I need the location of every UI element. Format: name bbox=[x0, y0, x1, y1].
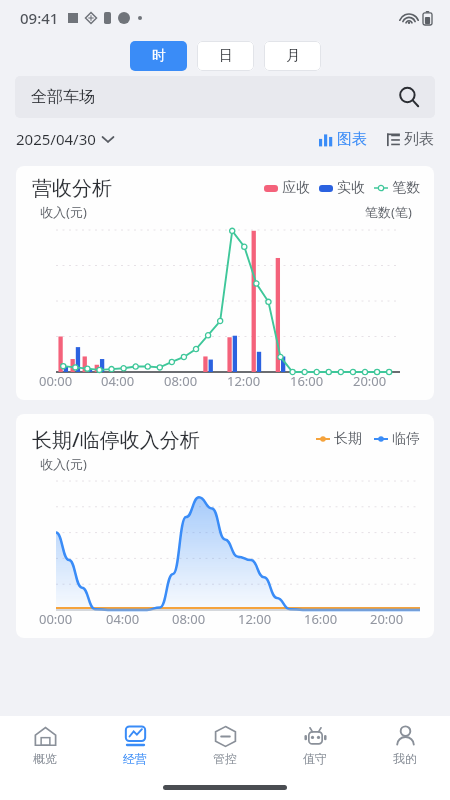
button[interactable]: 时 bbox=[130, 41, 187, 71]
staticText: 收入(元) bbox=[40, 203, 87, 221]
button[interactable]: 管控 bbox=[180, 716, 270, 774]
staticText: 00:00 bbox=[39, 372, 73, 390]
button[interactable]: 概览 bbox=[0, 716, 90, 774]
staticText: 08:00 bbox=[172, 610, 206, 628]
staticText: 04:00 bbox=[106, 610, 140, 628]
staticText: 16:00 bbox=[304, 610, 338, 628]
button[interactable]: 月 bbox=[264, 41, 321, 71]
staticText: 营收分析 bbox=[32, 176, 112, 201]
staticText: 概览 bbox=[33, 751, 57, 766]
staticText: 我的 bbox=[393, 751, 417, 766]
staticText: 笔数 bbox=[392, 179, 420, 197]
button[interactable]: 值守 bbox=[270, 716, 360, 774]
staticText: 全部车场 bbox=[31, 87, 95, 107]
staticText: 临停 bbox=[392, 430, 420, 448]
staticText: 收入(元) bbox=[40, 455, 87, 473]
button[interactable]: 列表 bbox=[387, 130, 434, 149]
button[interactable]: 日 bbox=[197, 41, 254, 71]
button[interactable]: 长期/临停收入分析 bbox=[16, 414, 434, 638]
staticText: 时 bbox=[152, 47, 166, 65]
staticText: 09:41 bbox=[20, 8, 59, 28]
staticText: 00:00 bbox=[39, 610, 73, 628]
staticText: 日 bbox=[219, 47, 233, 65]
button[interactable]: 我的 bbox=[360, 716, 450, 774]
staticText: 应收 bbox=[282, 179, 310, 197]
staticText: 12:00 bbox=[238, 610, 272, 628]
staticText: 16:00 bbox=[290, 372, 324, 390]
staticText: 04:00 bbox=[101, 372, 135, 390]
staticText: 列表 bbox=[404, 130, 434, 149]
staticText: 值守 bbox=[303, 751, 327, 766]
staticText: 2025/04/30 bbox=[16, 129, 96, 149]
other: Search bbox=[399, 87, 419, 107]
staticText: 笔数(笔) bbox=[365, 203, 412, 221]
staticText: 经营 bbox=[123, 751, 147, 766]
staticText: 月 bbox=[286, 47, 300, 65]
button[interactable]: 营收分析 bbox=[16, 166, 434, 400]
staticText: 长期/临停收入分析 bbox=[32, 426, 200, 453]
button[interactable]: 经营 bbox=[90, 716, 180, 774]
staticText: 实收 bbox=[337, 179, 365, 197]
staticText: 长期 bbox=[334, 430, 362, 448]
button[interactable]: 全部车场 bbox=[15, 76, 435, 118]
staticText: 管控 bbox=[213, 751, 237, 766]
staticText: 12:00 bbox=[227, 372, 261, 390]
button[interactable]: 图表 bbox=[319, 130, 367, 149]
staticText: 08:00 bbox=[164, 372, 198, 390]
button[interactable]: 2025/04/30 bbox=[16, 129, 114, 149]
staticText: 20:00 bbox=[353, 372, 387, 390]
staticText: 图表 bbox=[337, 130, 367, 149]
staticText: 20:00 bbox=[370, 610, 404, 628]
